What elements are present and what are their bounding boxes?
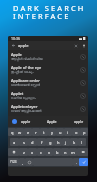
button[interactable]: Insert query <box>80 67 86 73</box>
staticText: a <box>13 140 16 145</box>
button[interactable]: m <box>69 148 77 156</box>
staticText: , <box>22 160 23 165</box>
staticText: j <box>65 140 67 145</box>
button[interactable]: Clear <box>74 44 78 48</box>
button[interactable]: h <box>54 138 62 146</box>
button[interactable]: s <box>19 138 28 146</box>
button[interactable]: c <box>37 148 45 156</box>
staticText: l <box>81 140 83 145</box>
staticText: Applicare order <box>11 78 40 83</box>
staticText: e <box>27 130 30 135</box>
staticText: v <box>48 150 51 155</box>
staticText: ഓൺലൈൻ സ്റ്റോർ <box>11 83 41 87</box>
button[interactable]: i <box>64 128 72 136</box>
button[interactable]: r <box>32 128 40 136</box>
button[interactable]: x <box>28 148 37 156</box>
button[interactable]: w <box>16 128 24 136</box>
button[interactable]: j <box>62 138 70 146</box>
staticText: u <box>59 130 62 135</box>
staticText: Applet <box>11 91 24 96</box>
staticText: g <box>49 140 52 145</box>
button[interactable]: Appletonlayer <box>8 102 88 115</box>
staticText: t <box>43 130 45 135</box>
staticText: . <box>76 160 77 165</box>
staticText: o <box>75 130 78 135</box>
staticText: p <box>83 130 86 135</box>
staticText: ഇംഗ്ലീഷ് വാക്യം <box>11 70 34 74</box>
button[interactable]: Back <box>11 43 16 48</box>
button[interactable]: Back <box>8 41 88 50</box>
button[interactable]: Apple of the eye <box>8 63 88 76</box>
button[interactable]: Search <box>79 158 88 166</box>
staticText: ?123 <box>10 160 17 164</box>
button[interactable] <box>8 148 19 156</box>
staticText: apple <box>21 119 31 124</box>
button[interactable]: Insert query <box>80 106 86 112</box>
staticText: f <box>41 140 43 145</box>
button[interactable]: Insert query <box>80 93 86 99</box>
staticText: w <box>18 130 22 135</box>
button[interactable]: Applet <box>8 89 88 102</box>
button[interactable]: g <box>46 138 54 146</box>
staticText: Apple of the eye <box>11 65 42 70</box>
button[interactable]: b <box>53 148 61 156</box>
staticText: 10:36 <box>11 36 20 41</box>
button[interactable]: y <box>48 128 56 136</box>
staticText: q <box>11 130 14 135</box>
staticText: i <box>67 130 69 135</box>
staticText: s <box>23 140 25 145</box>
button[interactable]: Google <box>12 119 17 124</box>
staticText: z <box>23 150 25 155</box>
staticText: h <box>57 140 60 145</box>
button[interactable]: Apple <box>8 50 88 63</box>
staticText: വെബ് ആപ്ലിക്കേഷൻ <box>11 109 42 113</box>
button[interactable] <box>77 148 88 156</box>
staticText: d <box>31 140 34 145</box>
button[interactable]: o <box>72 128 80 136</box>
button[interactable]: v <box>45 148 53 156</box>
button[interactable]: Insert query <box>80 54 86 60</box>
button[interactable]: a <box>10 138 19 146</box>
staticText: k <box>73 140 76 145</box>
button[interactable]: t <box>40 128 48 136</box>
staticText: Appletonlayer <box>11 104 38 109</box>
button[interactable]: l <box>78 138 86 146</box>
button[interactable]: f <box>37 138 46 146</box>
button[interactable]: Voice search <box>82 44 86 48</box>
button[interactable] <box>25 158 33 166</box>
staticText: r <box>35 130 37 135</box>
staticText: c <box>40 150 42 155</box>
staticText: y <box>51 130 54 135</box>
staticText: b <box>56 150 59 155</box>
button[interactable]: z <box>19 148 28 156</box>
button[interactable]: d <box>28 138 37 146</box>
button[interactable]: ?123 <box>8 158 19 166</box>
staticText: n <box>64 150 67 155</box>
staticText: x <box>31 150 34 155</box>
button[interactable]: Insert query <box>80 80 86 86</box>
button[interactable]: n <box>61 148 69 156</box>
button[interactable]: p <box>80 128 88 136</box>
button[interactable]: e <box>24 128 32 136</box>
staticText: m <box>71 150 75 155</box>
button[interactable]: k <box>70 138 78 146</box>
staticText: Apple <box>47 119 57 124</box>
button[interactable]: . <box>73 158 79 166</box>
button[interactable]: u <box>56 128 64 136</box>
button[interactable]: , <box>19 158 25 166</box>
staticText: ആപ്പിൾ വിക്കിപീഡിയ <box>11 57 43 61</box>
staticText: ചെറിയ പ്രോഗ്രാം <box>11 96 36 100</box>
button[interactable]: Applicare order <box>8 76 88 89</box>
staticText: apple <box>74 119 84 124</box>
staticText: Apple <box>11 52 22 57</box>
staticText: apple <box>18 43 29 48</box>
button[interactable]: q <box>8 128 16 136</box>
staticText: DARK SEARCH <box>13 3 86 13</box>
staticText: INTERFACE <box>13 11 71 21</box>
